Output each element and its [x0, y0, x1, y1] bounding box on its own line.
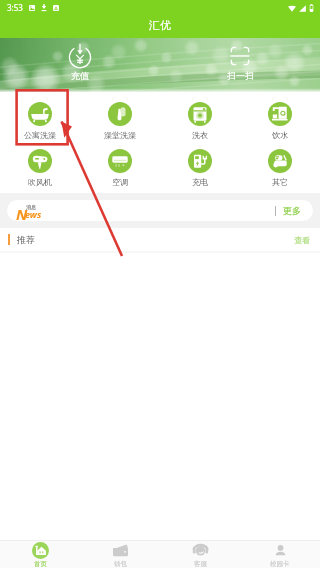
button[interactable]: 吹风机: [0, 149, 80, 187]
staticText: 充电: [192, 177, 208, 187]
button[interactable]: 其它: [240, 149, 320, 187]
staticText: 汇优: [149, 18, 171, 32]
staticText: ews: [25, 208, 42, 220]
staticText: 饮水: [272, 130, 288, 140]
staticText: 首页: [34, 560, 47, 568]
staticText: 洗衣: [192, 130, 208, 140]
staticText: 推荐: [17, 234, 35, 245]
button[interactable]: 澡堂洗澡: [80, 102, 160, 140]
button[interactable]: 公寓洗澡: [0, 102, 80, 140]
staticText: 校园卡: [270, 560, 290, 568]
staticText: 更多: [283, 205, 301, 216]
button[interactable]: 充值: [64, 44, 96, 81]
staticText: 查看: [294, 235, 310, 245]
staticText: 消息: [26, 204, 36, 210]
button[interactable]: 校园卡: [240, 541, 320, 568]
button[interactable]: 饮水: [240, 102, 320, 140]
button[interactable]: N: [7, 200, 313, 221]
staticText: 扫一扫: [227, 70, 254, 81]
button[interactable]: 客服: [160, 541, 240, 568]
button[interactable]: 空调: [80, 149, 160, 187]
staticText: 公寓洗澡: [24, 130, 56, 140]
staticText: 客服: [194, 560, 207, 568]
staticText: 钱包: [114, 560, 127, 568]
staticText: 3:53: [7, 2, 23, 13]
button[interactable]: 钱包: [80, 541, 160, 568]
staticText: 澡堂洗澡: [104, 130, 136, 140]
staticText: 吹风机: [28, 177, 52, 187]
button[interactable]: 扫一扫: [224, 44, 256, 81]
button[interactable]: 洗衣: [160, 102, 240, 140]
staticText: 空调: [112, 177, 128, 187]
button[interactable]: 首页: [0, 541, 80, 568]
button[interactable]: 充电: [160, 149, 240, 187]
button[interactable]: 推荐: [0, 228, 320, 251]
staticText: 其它: [272, 177, 288, 187]
staticText: 充值: [71, 70, 89, 81]
staticText: N: [16, 204, 28, 221]
